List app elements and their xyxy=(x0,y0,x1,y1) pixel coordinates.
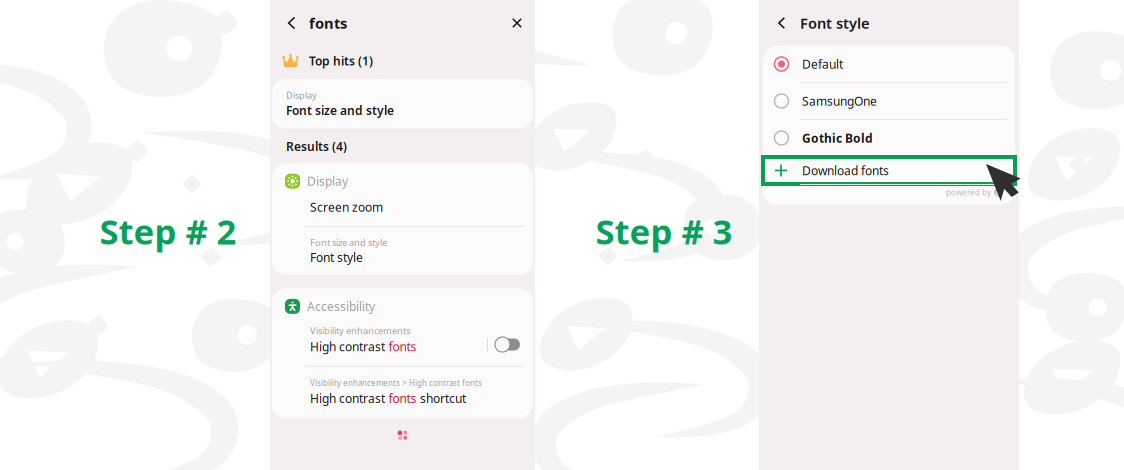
button[interactable]: Close xyxy=(505,8,529,38)
staticText: Font style xyxy=(310,249,363,265)
staticText: Display xyxy=(307,173,348,189)
staticText: Font size and style xyxy=(310,236,387,248)
staticText: Default xyxy=(802,56,843,72)
staticText: Font style xyxy=(800,13,870,33)
staticText: fonts xyxy=(309,13,347,33)
button[interactable]: Screen zoom xyxy=(272,189,533,226)
staticText: Gothic Bold xyxy=(802,130,873,146)
button[interactable]: Visibility enhancements xyxy=(272,314,533,366)
staticText: Step # 3 xyxy=(595,208,732,254)
staticText: Visibility enhancements xyxy=(310,324,410,337)
staticText: fonts xyxy=(388,390,416,406)
button[interactable]: Gothic Bold xyxy=(763,120,1015,156)
staticText: Step # 2 xyxy=(99,208,236,254)
staticText: Accessibility xyxy=(307,298,375,314)
button[interactable]: Default xyxy=(763,46,1015,82)
staticText: fonts xyxy=(388,339,416,355)
button[interactable]: Display xyxy=(272,79,533,128)
button[interactable]: Back xyxy=(771,9,793,37)
staticText: powered by xyxy=(946,187,991,198)
staticText: Display xyxy=(286,89,317,101)
staticText: Font size and style xyxy=(286,102,394,118)
button[interactable]: Visibility enhancements > High contrast … xyxy=(272,367,533,418)
button[interactable]: Font size and style xyxy=(272,227,533,274)
staticText: Results (4) xyxy=(286,138,347,154)
staticText: Download fonts xyxy=(802,162,889,178)
staticText: High contrast xyxy=(310,390,385,406)
staticText: High contrast xyxy=(310,339,385,355)
staticText: shortcut xyxy=(420,390,466,406)
button[interactable]: Download fonts xyxy=(763,157,1015,184)
staticText: Top hits (1) xyxy=(309,53,373,69)
button[interactable]: SamsungOne xyxy=(763,83,1015,119)
staticText: Visibility enhancements > High contrast … xyxy=(310,378,482,388)
staticText: Screen zoom xyxy=(310,199,383,215)
button[interactable]: Back xyxy=(281,8,303,38)
staticText: SamsungOne xyxy=(802,93,877,109)
